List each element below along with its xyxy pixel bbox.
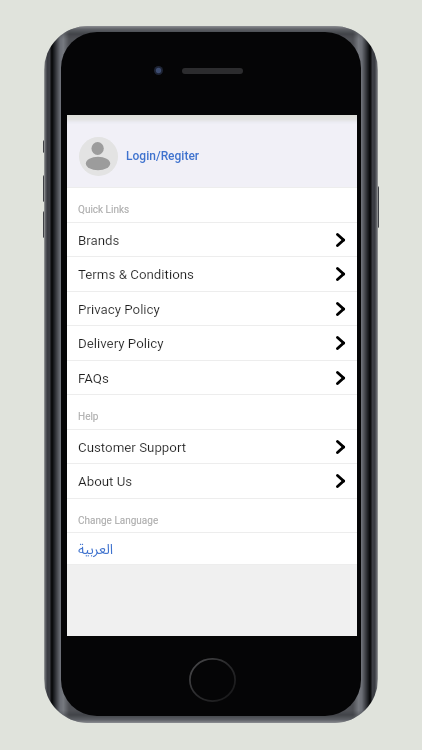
button[interactable]: FAQs xyxy=(67,360,357,394)
staticText: Delivery Policy xyxy=(78,336,164,352)
button[interactable]: Customer Support xyxy=(67,429,357,463)
staticText: FAQs xyxy=(78,371,109,387)
staticText: العربية xyxy=(78,535,114,565)
staticText: About Us xyxy=(78,474,133,490)
staticText: Brands xyxy=(78,233,120,249)
button[interactable]: About Us xyxy=(67,463,357,497)
button[interactable]: Brands xyxy=(67,222,357,256)
staticText: Privacy Policy xyxy=(78,302,160,318)
staticText: Terms & Conditions xyxy=(78,267,194,283)
staticText: Help xyxy=(78,411,99,423)
button[interactable]: Privacy Policy xyxy=(67,291,357,325)
button[interactable]: Login/Regiter xyxy=(67,115,357,187)
staticText: Change Language xyxy=(78,515,159,527)
button[interactable]: Terms & Conditions xyxy=(67,256,357,290)
button[interactable]: العربية xyxy=(67,532,357,566)
staticText: Quick Links xyxy=(78,204,130,216)
staticText: Login/Regiter xyxy=(126,149,200,163)
button[interactable]: Delivery Policy xyxy=(67,325,357,359)
staticText: Customer Support xyxy=(78,440,187,456)
